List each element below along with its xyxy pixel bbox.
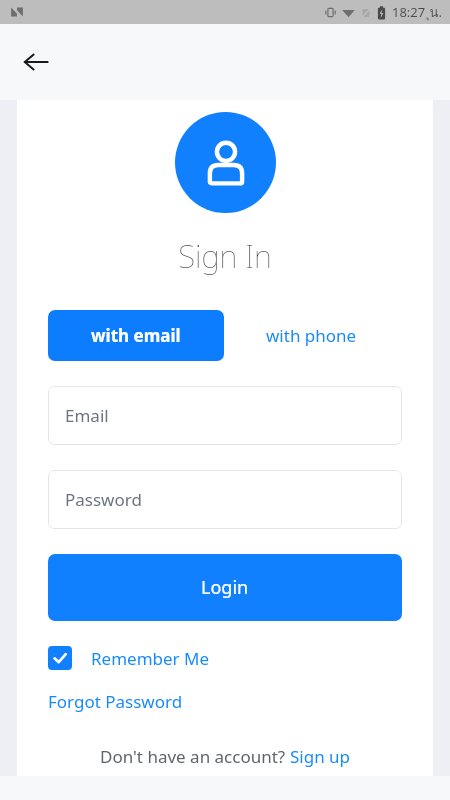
staticText: Email xyxy=(65,404,109,427)
button[interactable]: Login xyxy=(48,554,402,621)
button[interactable]: Back xyxy=(14,40,58,84)
staticText: Sign In xyxy=(178,235,272,277)
staticText: Sign up xyxy=(290,745,351,768)
staticText: with phone xyxy=(266,324,357,347)
button[interactable]: Password xyxy=(48,470,402,529)
staticText: with email xyxy=(91,324,181,347)
button[interactable]: with email xyxy=(48,310,224,361)
staticText: Don't have an account? xyxy=(100,745,290,768)
button[interactable]: with phone xyxy=(224,310,369,361)
staticText: Remember Me xyxy=(91,647,210,670)
staticText: Forgot Password xyxy=(48,690,183,713)
staticText: 18:27 ุน. xyxy=(392,2,442,23)
staticText: Password xyxy=(65,488,142,511)
button[interactable]: Forgot Password xyxy=(48,690,183,713)
button[interactable]: Remember Me xyxy=(48,646,433,670)
button[interactable]: Email xyxy=(48,386,402,445)
staticText: Login xyxy=(201,575,249,600)
button[interactable]: Sign up xyxy=(290,745,351,768)
